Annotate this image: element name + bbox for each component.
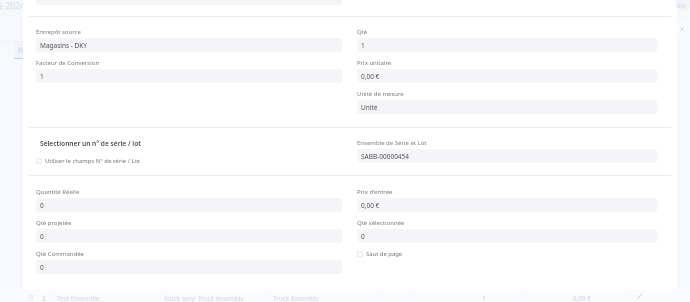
staticText: Qté projetée: [36, 219, 72, 227]
button[interactable]: 0: [357, 229, 657, 243]
staticText: Qté sélectionnée: [357, 219, 405, 227]
button[interactable]: 0: [36, 229, 342, 243]
staticText: 0,00 €: [573, 294, 591, 302]
staticText: 0: [40, 201, 44, 210]
staticText: Entrepôt source: [36, 28, 81, 36]
staticText: Truck Assembly: [273, 294, 319, 302]
staticText: 0: [40, 263, 44, 272]
button[interactable]: Saut de page: [357, 250, 403, 258]
staticText: 1: [482, 294, 486, 302]
staticText: 1: [361, 41, 365, 50]
staticText: Facteur de Conversion: [36, 59, 100, 67]
staticText: 2: [42, 294, 46, 302]
button[interactable]: Edit: [635, 292, 643, 300]
staticText: Quantité Réelle: [36, 188, 80, 196]
staticText: 0,00 €: [361, 72, 380, 81]
button[interactable]: Unité: [357, 100, 657, 114]
staticText: SABB-00000454: [361, 152, 410, 161]
staticText: Unité de mesure: [357, 90, 404, 98]
staticText: Qté Commandée: [36, 250, 84, 258]
button[interactable]: 0: [36, 198, 342, 212]
button[interactable]: Utiliser le champs N° de série / Lot: [36, 157, 141, 165]
staticText: 0: [361, 232, 365, 241]
button[interactable]: 0,00 €: [357, 198, 657, 212]
staticText: 1: [40, 72, 44, 81]
button[interactable]: 0,00 €: [357, 69, 657, 83]
staticText: Ensemble de Série et Lot: [357, 139, 427, 147]
staticText: Prix d'entrée: [357, 188, 393, 196]
staticText: 0: [40, 232, 44, 241]
staticText: N-2024-: [0, 0, 28, 12]
staticText: Test Ensemble: [57, 294, 100, 302]
button[interactable]: Magasins - DKY: [36, 38, 342, 52]
button[interactable]: Close: [677, 24, 686, 33]
staticText: Saut de page: [366, 250, 403, 258]
staticText: Magasins - DKY: [40, 41, 88, 50]
staticText: truck assy: Truck Assembly: [165, 294, 244, 302]
staticText: 0,00 €: [361, 201, 380, 210]
button[interactable]: SABB-00000454: [357, 149, 657, 163]
staticText: Sélectionner un n° de série / lot: [40, 139, 141, 148]
staticText: Utiliser le champs N° de série / Lot: [45, 157, 141, 165]
staticText: Unité: [361, 103, 378, 112]
staticText: Qté: [357, 28, 368, 36]
staticText: Prix unitaire: [357, 59, 392, 67]
button[interactable]: 0: [36, 260, 342, 274]
